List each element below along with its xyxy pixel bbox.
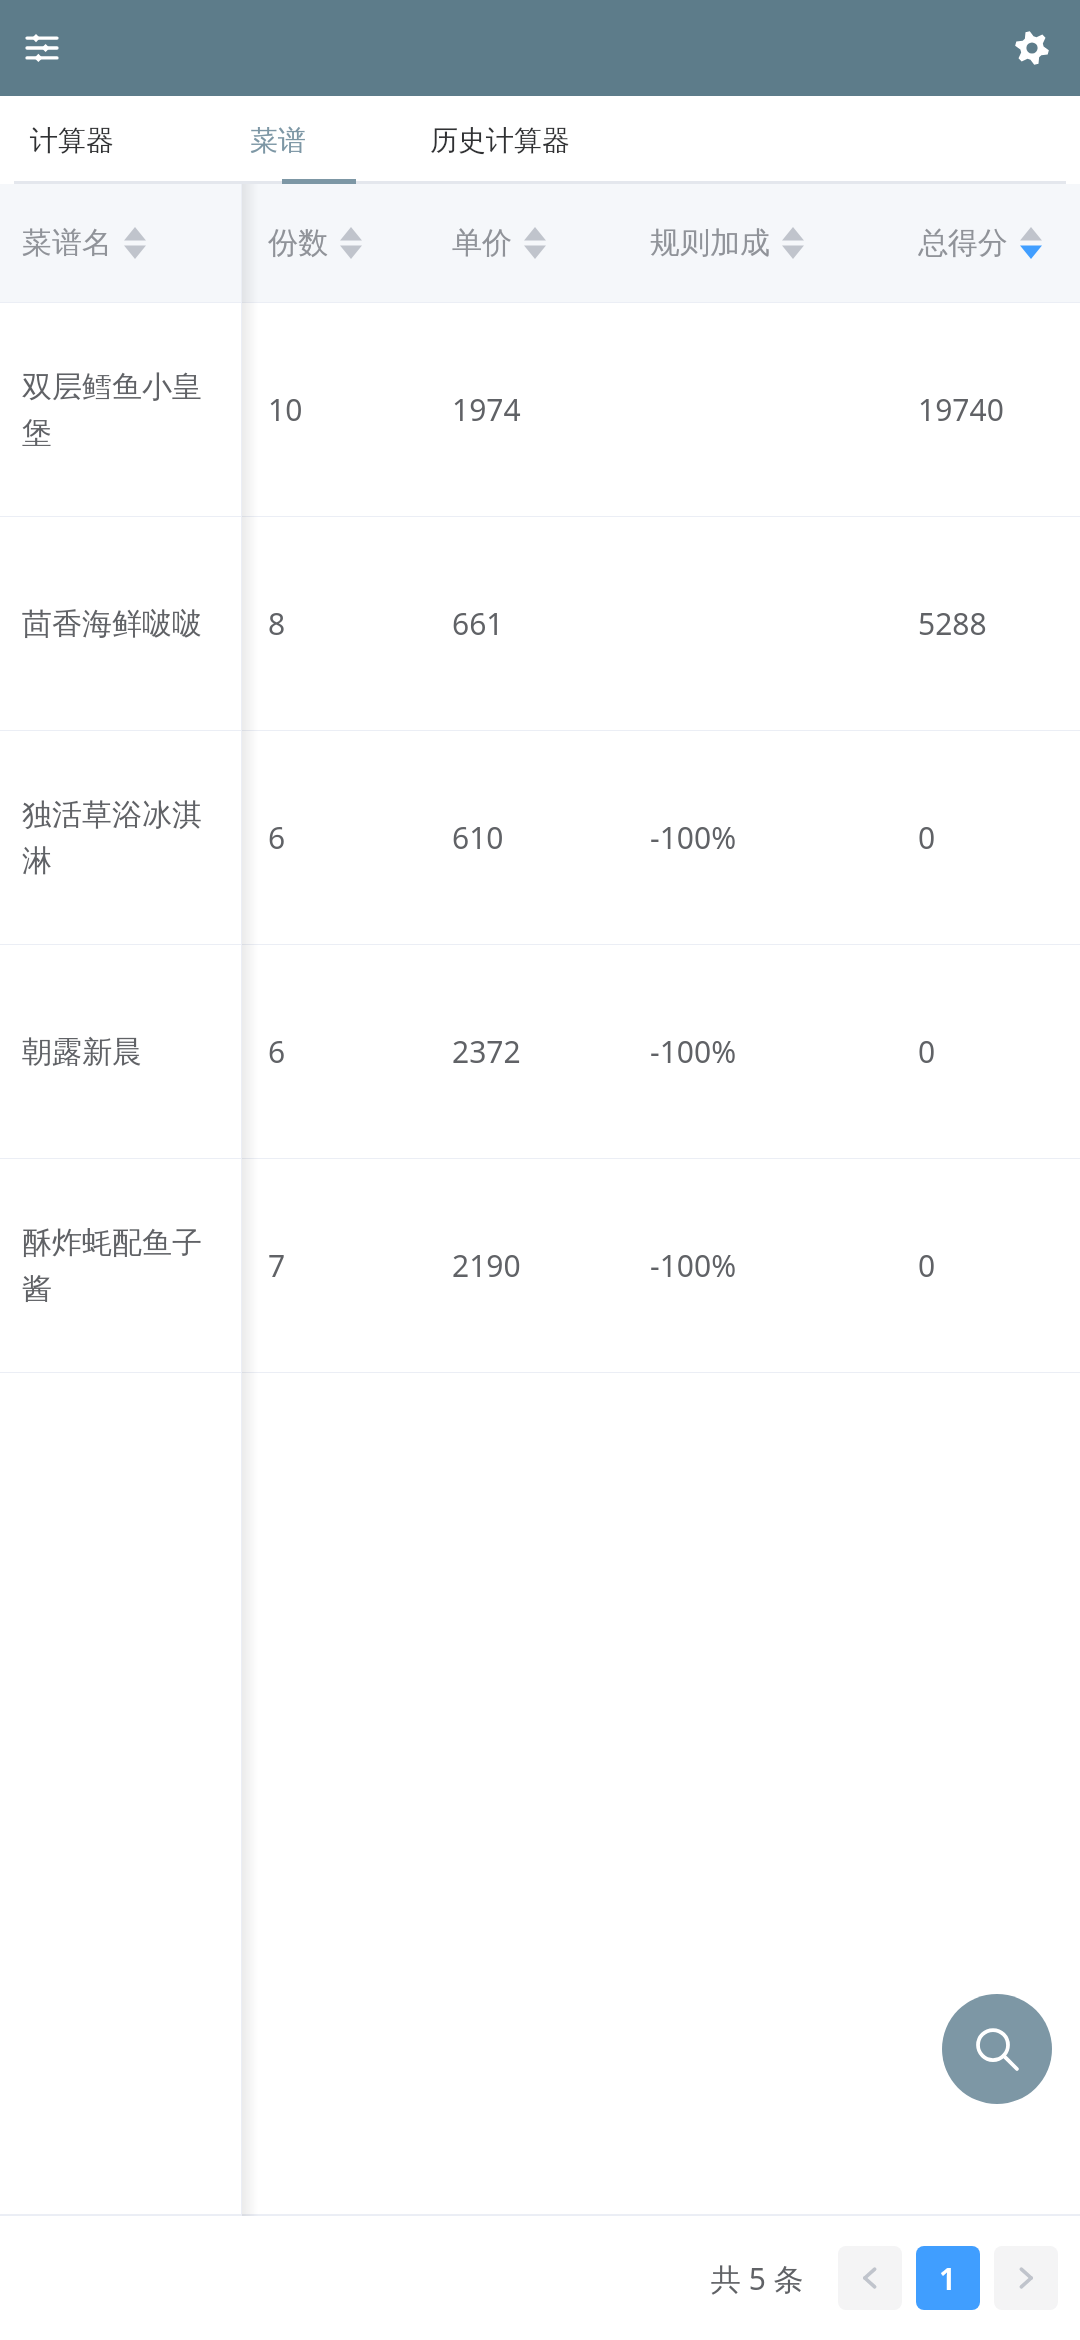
- button[interactable]: 单价: [452, 184, 546, 302]
- staticText: 6: [268, 1031, 286, 1072]
- staticText: 共 5 条: [711, 2258, 804, 2299]
- staticText: 历史计算器: [430, 123, 570, 158]
- button[interactable]: 1: [916, 2246, 980, 2310]
- button[interactable]: 茴香海鲜啵啵: [0, 517, 1080, 730]
- staticText: 双层鳕鱼小皇堡: [22, 368, 222, 452]
- staticText: 2372: [452, 1031, 521, 1072]
- button[interactable]: 菜谱名: [22, 184, 146, 302]
- staticText: 0: [918, 1245, 936, 1286]
- button[interactable]: 菜谱: [250, 96, 410, 184]
- button[interactable]: 酥炸蚝配鱼子酱: [0, 1159, 1080, 1372]
- staticText: 独活草浴冰淇淋: [22, 796, 222, 880]
- staticText: 朝露新晨: [22, 1033, 222, 1071]
- staticText: 份数: [268, 224, 328, 262]
- staticText: 6: [268, 817, 286, 858]
- button[interactable]: Filter settings: [14, 20, 70, 76]
- staticText: 酥炸蚝配鱼子酱: [22, 1224, 222, 1308]
- button[interactable]: 总得分: [918, 184, 1042, 302]
- staticText: 0: [918, 817, 936, 858]
- staticText: 10: [268, 389, 303, 430]
- staticText: 7: [268, 1245, 286, 1286]
- button[interactable]: Page navigation: [994, 2246, 1058, 2310]
- staticText: 2190: [452, 1245, 521, 1286]
- button[interactable]: Settings: [1002, 18, 1062, 78]
- button[interactable]: 历史计算器: [410, 96, 1080, 184]
- staticText: 19740: [918, 389, 1004, 430]
- staticText: 菜谱: [250, 123, 306, 158]
- button[interactable]: 朝露新晨: [0, 945, 1080, 1158]
- staticText: 规则加成: [650, 224, 770, 262]
- staticText: 610: [452, 817, 504, 858]
- staticText: 1974: [452, 389, 521, 430]
- staticText: 单价: [452, 224, 512, 262]
- button[interactable]: Page navigation: [838, 2246, 902, 2310]
- staticText: -100%: [650, 817, 737, 858]
- button[interactable]: 独活草浴冰淇淋: [0, 731, 1080, 944]
- staticText: 5288: [918, 603, 987, 644]
- staticText: 总得分: [918, 224, 1008, 262]
- staticText: 计算器: [30, 123, 114, 158]
- staticText: 菜谱名: [22, 224, 112, 262]
- staticText: 茴香海鲜啵啵: [22, 605, 222, 643]
- button[interactable]: 份数: [268, 184, 362, 302]
- staticText: -100%: [650, 1245, 737, 1286]
- staticText: 8: [268, 603, 286, 644]
- button[interactable]: 计算器: [0, 96, 250, 184]
- staticText: -100%: [650, 1031, 737, 1072]
- button[interactable]: 规则加成: [650, 184, 804, 302]
- button[interactable]: 双层鳕鱼小皇堡: [0, 303, 1080, 516]
- button[interactable]: Search: [942, 1994, 1052, 2104]
- staticText: 661: [452, 603, 504, 644]
- staticText: 1: [939, 2258, 957, 2299]
- staticText: 0: [918, 1031, 936, 1072]
